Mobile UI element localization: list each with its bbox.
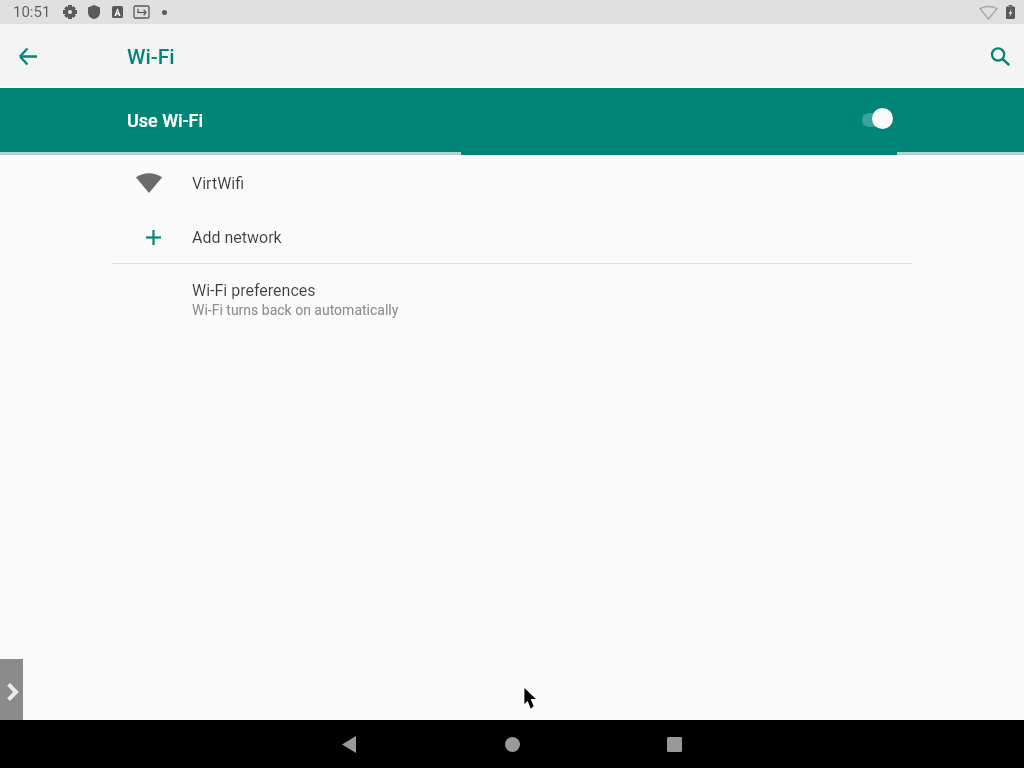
button[interactable]: Use Wi-Fi bbox=[0, 88, 1024, 152]
staticText: Add network bbox=[192, 228, 282, 247]
button[interactable]: Wi-Fi preferences bbox=[0, 266, 1024, 332]
button[interactable]: Expand side panel bbox=[0, 659, 23, 720]
staticText: Wi-Fi bbox=[127, 45, 175, 70]
button[interactable]: Add network bbox=[0, 211, 1024, 264]
staticText: 10:51 bbox=[13, 3, 51, 21]
button[interactable]: Back bbox=[325, 720, 373, 768]
button[interactable]: VirtWifi bbox=[0, 157, 1024, 210]
button[interactable]: Search bbox=[972, 28, 1024, 84]
button[interactable]: Recent apps bbox=[650, 720, 698, 768]
button[interactable]: Home bbox=[488, 720, 536, 768]
staticText: Wi-Fi preferences bbox=[192, 281, 316, 300]
staticText: VirtWifi bbox=[192, 174, 245, 193]
button[interactable]: Navigate up bbox=[0, 28, 56, 84]
staticText: Wi-Fi turns back on automatically bbox=[192, 302, 399, 318]
staticText: Use Wi-Fi bbox=[127, 110, 204, 131]
